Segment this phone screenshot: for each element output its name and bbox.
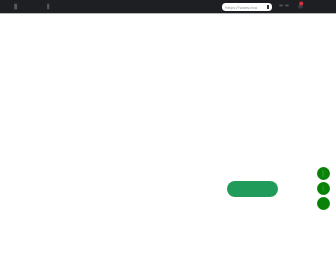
button[interactable]: Extensions — [277, 2, 285, 10]
staticText: https://www.example.com — [225, 5, 257, 11]
button[interactable]: Account notifications — [296, 0, 307, 11]
button[interactable]: Option two — [317, 182, 330, 195]
button[interactable]: Option one — [317, 167, 330, 180]
button[interactable]: Bookmarks — [283, 2, 291, 10]
button[interactable]: Primary action — [227, 181, 278, 197]
button[interactable]: Tab one — [6, 1, 36, 13]
button[interactable]: Tab two — [38, 1, 68, 13]
button[interactable]: Option three — [317, 197, 330, 210]
button[interactable]: Search or type URL — [222, 3, 272, 11]
